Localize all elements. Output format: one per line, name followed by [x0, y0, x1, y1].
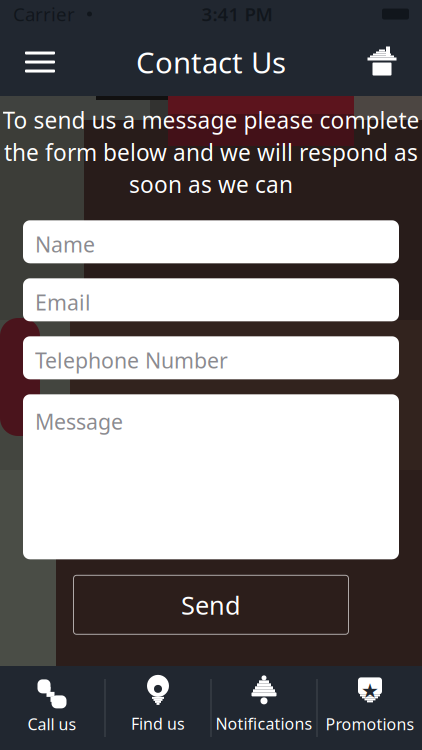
button[interactable]: Call us [0, 666, 104, 750]
staticText: Notifications [215, 713, 312, 734]
button[interactable]: Home [354, 32, 410, 92]
button[interactable]: Message [23, 394, 399, 559]
button[interactable]: Menu [12, 32, 68, 92]
staticText: To send us a message please complete [2, 105, 419, 135]
staticText: Contact Us [136, 42, 286, 81]
staticText: the form below and we will respond as [4, 137, 418, 167]
staticText: soon as we can [129, 169, 293, 199]
button[interactable]: Email [23, 278, 399, 321]
staticText: Find us [131, 713, 185, 734]
staticText: Promotions [325, 713, 414, 735]
staticText: Carrier [13, 2, 75, 26]
button[interactable]: Notifications [211, 666, 316, 750]
staticText: Message [35, 407, 123, 436]
staticText: Email [35, 288, 91, 316]
button[interactable]: Find us [105, 666, 210, 750]
staticText: Send [181, 588, 241, 622]
button[interactable]: Telephone Number [23, 336, 399, 379]
staticText: ★ [361, 679, 379, 702]
staticText: 3:41 PM [201, 2, 272, 26]
staticText: Telephone Number [35, 346, 228, 374]
staticText: Call us [27, 713, 76, 735]
staticText: Name [35, 230, 95, 258]
button[interactable]: ★ [317, 666, 422, 750]
button[interactable]: Send [73, 575, 348, 634]
button[interactable]: Name [23, 220, 399, 263]
